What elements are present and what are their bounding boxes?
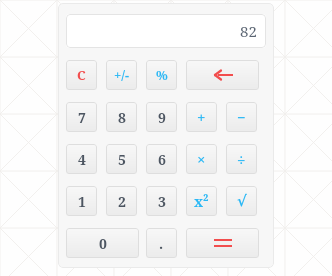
staticText: 1 bbox=[78, 192, 86, 211]
button[interactable]: 6 bbox=[146, 144, 177, 174]
staticText: +/- bbox=[114, 66, 130, 84]
staticText: 3 bbox=[158, 192, 166, 211]
button[interactable]: 9 bbox=[146, 102, 177, 132]
button[interactable]: √ bbox=[226, 186, 257, 216]
button[interactable]: + bbox=[186, 102, 217, 132]
staticText: 8 bbox=[118, 108, 126, 127]
button[interactable]: x² bbox=[186, 186, 217, 216]
staticText: 82 bbox=[240, 21, 257, 41]
button[interactable]: ÷ bbox=[226, 144, 257, 174]
staticText: × bbox=[197, 149, 206, 169]
button[interactable]: C bbox=[66, 60, 97, 90]
staticText: 4 bbox=[78, 150, 86, 169]
button[interactable]: Equals bbox=[186, 228, 259, 258]
button[interactable]: 4 bbox=[66, 144, 97, 174]
button[interactable]: 3 bbox=[146, 186, 177, 216]
staticText: 0 bbox=[99, 234, 107, 253]
staticText: 5 bbox=[118, 150, 126, 169]
button[interactable]: 0 bbox=[66, 228, 139, 258]
staticText: 2 bbox=[118, 192, 126, 211]
button[interactable]: 82 bbox=[66, 14, 266, 48]
staticText: % bbox=[156, 66, 168, 84]
staticText: . bbox=[159, 234, 164, 253]
staticText: 6 bbox=[158, 150, 166, 169]
button[interactable]: +/- bbox=[106, 60, 137, 90]
staticText: C bbox=[77, 66, 86, 84]
button[interactable]: % bbox=[146, 60, 177, 90]
staticText: + bbox=[197, 107, 206, 127]
button[interactable]: 7 bbox=[66, 102, 97, 132]
button[interactable]: Backspace bbox=[186, 60, 259, 90]
button[interactable]: . bbox=[146, 228, 177, 258]
button[interactable]: 1 bbox=[66, 186, 97, 216]
staticText: − bbox=[237, 107, 246, 127]
staticText: 7 bbox=[78, 108, 86, 127]
staticText: x² bbox=[194, 192, 209, 211]
button[interactable]: 5 bbox=[106, 144, 137, 174]
button[interactable]: − bbox=[226, 102, 257, 132]
button[interactable]: 2 bbox=[106, 186, 137, 216]
staticText: √ bbox=[237, 192, 247, 210]
staticText: ÷ bbox=[237, 149, 246, 169]
button[interactable]: 8 bbox=[106, 102, 137, 132]
button[interactable]: × bbox=[186, 144, 217, 174]
staticText: 9 bbox=[158, 108, 166, 127]
